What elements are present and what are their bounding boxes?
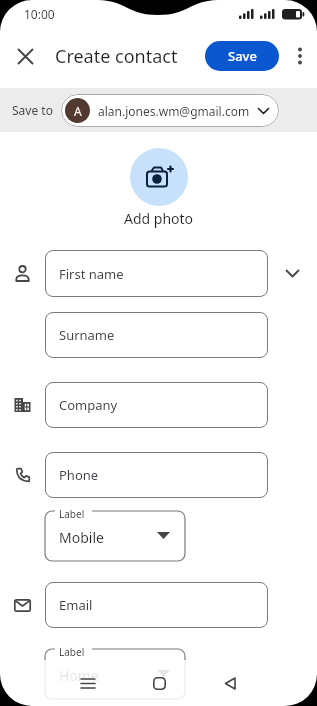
staticText: Save to [12,102,53,118]
staticText: Label [59,507,85,521]
staticText: A [74,103,82,119]
staticText: Phone [59,466,99,484]
button[interactable]: Phone [45,452,268,498]
staticText: Label [59,645,85,659]
staticText: Home [59,666,99,685]
staticText: Email [59,596,93,614]
button[interactable] [18,49,33,64]
staticText: 10:00 [24,6,55,22]
button[interactable]: Company [45,382,268,428]
staticText: Create contact [55,44,178,69]
button[interactable]: Label [45,645,185,699]
button[interactable]: A [61,94,279,127]
button[interactable] [291,47,309,65]
staticText: alan.jones.wm@gmail.com [98,103,250,119]
button[interactable] [286,270,299,277]
button[interactable] [130,148,188,206]
button[interactable]: First name [45,250,268,297]
staticText: Mobile [59,528,104,547]
button[interactable]: Save [205,41,279,71]
button[interactable] [153,677,166,690]
button[interactable] [81,678,95,690]
staticText: Save [228,47,257,65]
staticText: Surname [59,326,115,344]
button[interactable]: Label [45,507,185,561]
staticText: Add photo [124,209,194,228]
button[interactable] [224,677,236,690]
button[interactable]: Surname [45,312,268,358]
staticText: First name [59,265,124,283]
button[interactable]: Email [45,582,268,628]
staticText: Company [59,396,118,414]
